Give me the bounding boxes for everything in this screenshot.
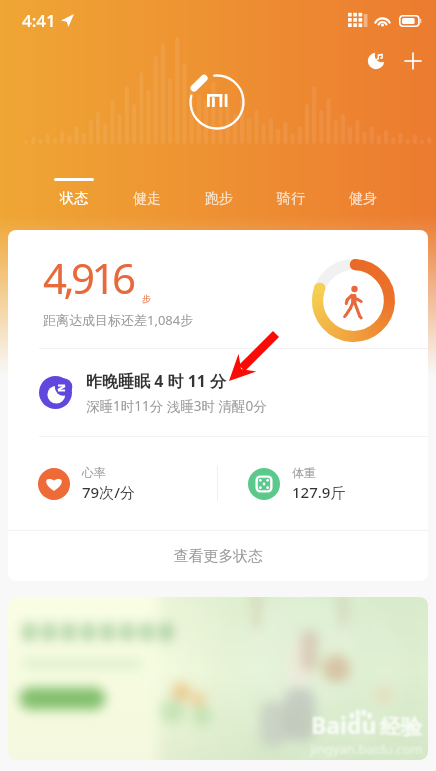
staticText: 深睡1时11分 浅睡3时 清醒0分	[86, 397, 267, 415]
staticText: Bai	[311, 709, 347, 740]
staticText: 经验	[380, 714, 422, 740]
staticText: 体重	[292, 465, 316, 480]
staticText: 骑行	[277, 190, 305, 208]
button[interactable]: 体重	[218, 465, 428, 502]
button[interactable]: Add device	[392, 40, 434, 82]
button[interactable]: 跑步	[183, 168, 255, 208]
staticText: 昨晚睡眠 4 时 11 分	[86, 370, 227, 392]
staticText: 距离达成目标还差1,084步	[43, 311, 194, 329]
staticText: 4:41	[22, 9, 56, 32]
button[interactable]: 健身	[327, 168, 399, 208]
staticText: jingyan.baidu.com	[310, 740, 423, 758]
staticText: 心率	[82, 465, 106, 480]
staticText: 查看更多状态	[174, 547, 263, 566]
button[interactable]: Promotion banner	[8, 597, 428, 760]
button[interactable]: 昨晚睡眠 4 时 11 分	[8, 349, 428, 436]
staticText: 健走	[133, 190, 161, 208]
button[interactable]: 骑行	[255, 168, 327, 208]
button[interactable]: 心率	[8, 465, 217, 502]
staticText: du	[347, 709, 377, 740]
staticText: 跑步	[205, 190, 233, 208]
button[interactable]: 状态	[37, 168, 110, 208]
button[interactable]: Mi Band	[183, 67, 253, 137]
staticText: 4,916	[43, 249, 133, 306]
staticText: 79次/分	[82, 482, 135, 502]
staticText: 步	[142, 293, 151, 304]
staticText: 127.9斤	[292, 482, 346, 502]
button[interactable]: 查看更多状态	[8, 531, 428, 581]
button[interactable]: Sleep music	[355, 40, 397, 82]
staticText: 状态	[60, 190, 88, 208]
button[interactable]: 健走	[110, 168, 183, 208]
staticText: 健身	[349, 190, 377, 208]
